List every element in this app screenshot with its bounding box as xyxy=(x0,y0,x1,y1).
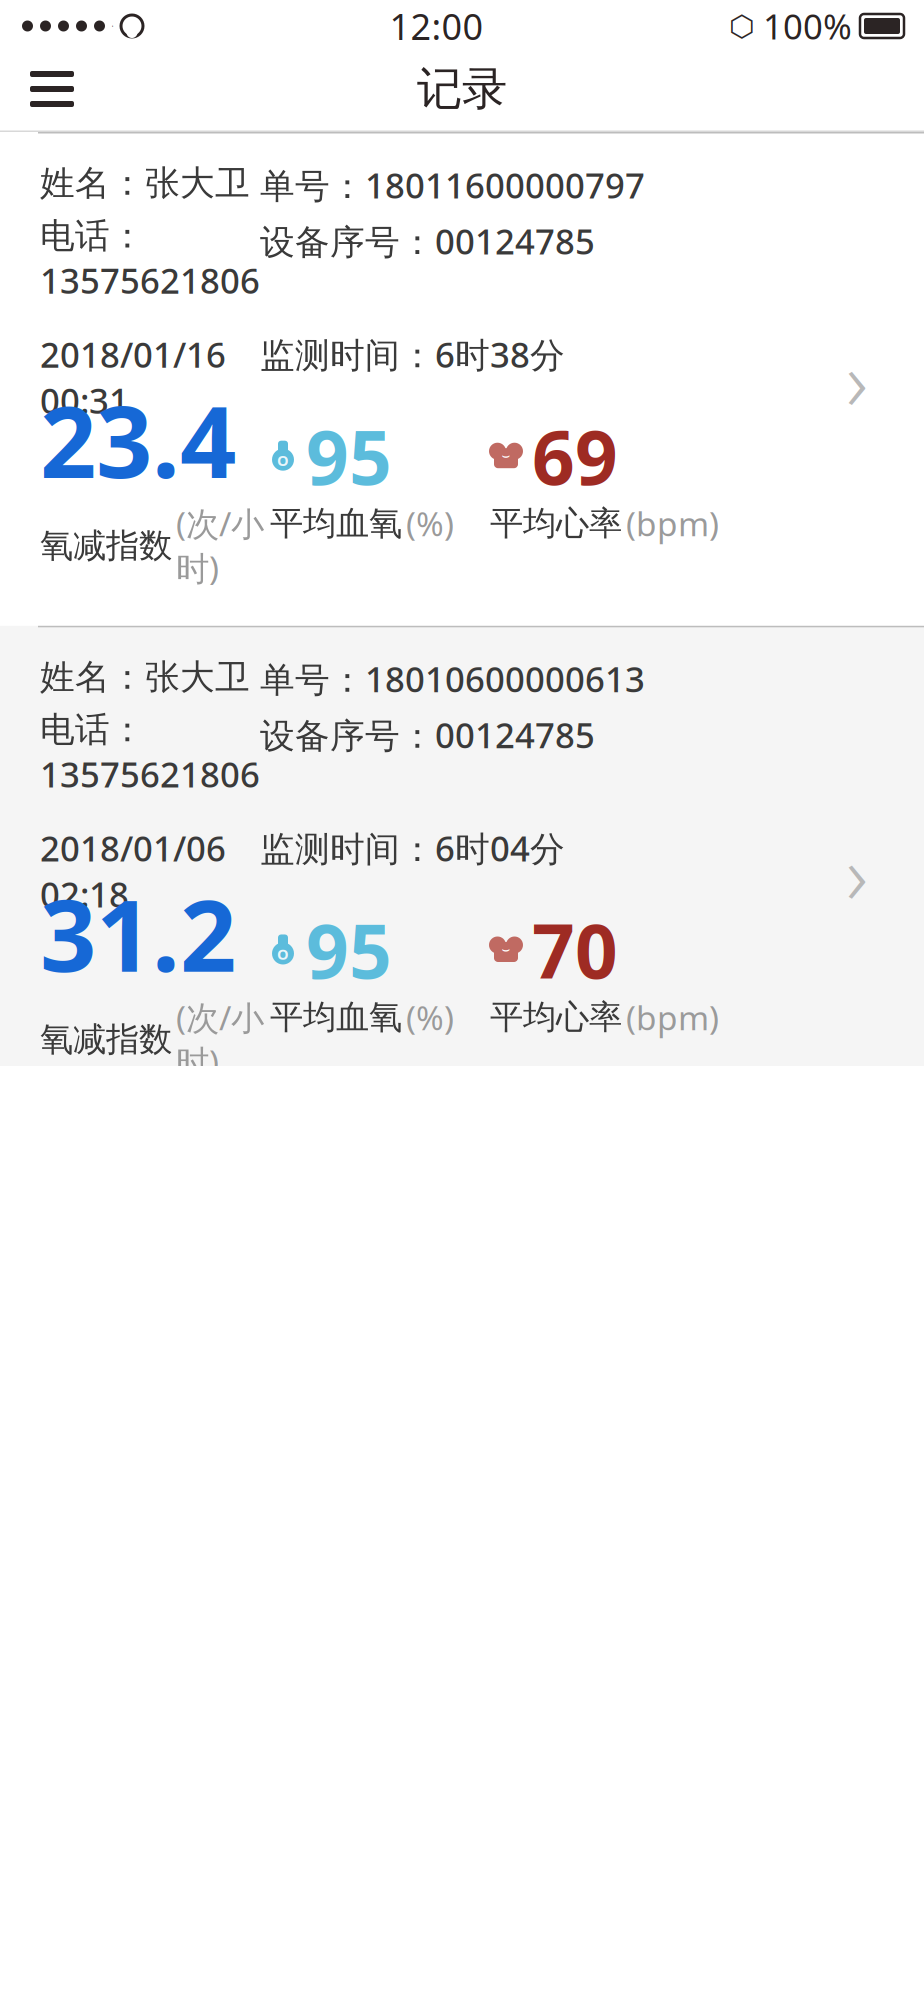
staticText: › xyxy=(846,324,868,434)
staticText: 95 xyxy=(306,406,392,505)
staticText: (bpm) xyxy=(626,995,719,1039)
staticText: 单号：18011600000797 xyxy=(260,162,645,208)
staticText: 平均心率 xyxy=(490,503,622,544)
staticText: ● xyxy=(112,25,113,27)
staticText: 70 xyxy=(532,900,618,999)
staticText: 100% xyxy=(763,3,852,49)
staticText: 69 xyxy=(532,406,618,505)
staticText: 平均血氧 xyxy=(270,503,402,544)
staticText: 电话：13575621806 xyxy=(40,708,260,797)
staticText: 姓名：张大卫 xyxy=(40,162,250,205)
staticText: (次/小时) xyxy=(176,501,264,590)
staticText: 平均心率 xyxy=(490,997,622,1038)
staticText: 2018/01/06 02:18 xyxy=(40,825,235,917)
staticText: 23.4 xyxy=(40,374,236,505)
staticText: 95 xyxy=(306,900,392,999)
staticText: 设备序号：00124785 xyxy=(260,712,595,758)
button[interactable]: 姓名：张大卫 xyxy=(0,626,924,1120)
staticText: O xyxy=(277,450,289,470)
staticText: 氧减指数 xyxy=(40,1019,172,1060)
staticText: O xyxy=(277,944,289,964)
staticText: 记录 xyxy=(417,61,507,117)
staticText: 31.2 xyxy=(40,868,236,999)
staticText: › xyxy=(846,818,868,928)
staticText: (%) xyxy=(406,501,454,546)
button[interactable]: 姓名：张大卫 xyxy=(0,132,924,626)
staticText: (%) xyxy=(406,995,454,1039)
staticText: 监测时间：6时38分 xyxy=(260,331,565,377)
staticText: (次/小时) xyxy=(176,995,264,1084)
staticText: ⌣ xyxy=(501,943,510,956)
button[interactable]: Menu xyxy=(16,57,88,121)
staticText: (bpm) xyxy=(626,501,719,546)
staticText: 单号：18010600000613 xyxy=(260,656,645,702)
staticText: 电话：13575621806 xyxy=(40,215,260,303)
staticText: 姓名：张大卫 xyxy=(40,656,250,698)
staticText: ⌣ xyxy=(501,449,510,462)
staticText: 设备序号：00124785 xyxy=(260,218,595,264)
staticText: 12:00 xyxy=(389,2,483,50)
staticText: 氧减指数 xyxy=(40,525,172,566)
staticText: 2018/01/16 00:31 xyxy=(40,331,235,423)
staticText: 监测时间：6时04分 xyxy=(260,825,565,871)
staticText: ⬡ xyxy=(729,9,755,43)
staticText: 平均血氧 xyxy=(270,997,402,1038)
